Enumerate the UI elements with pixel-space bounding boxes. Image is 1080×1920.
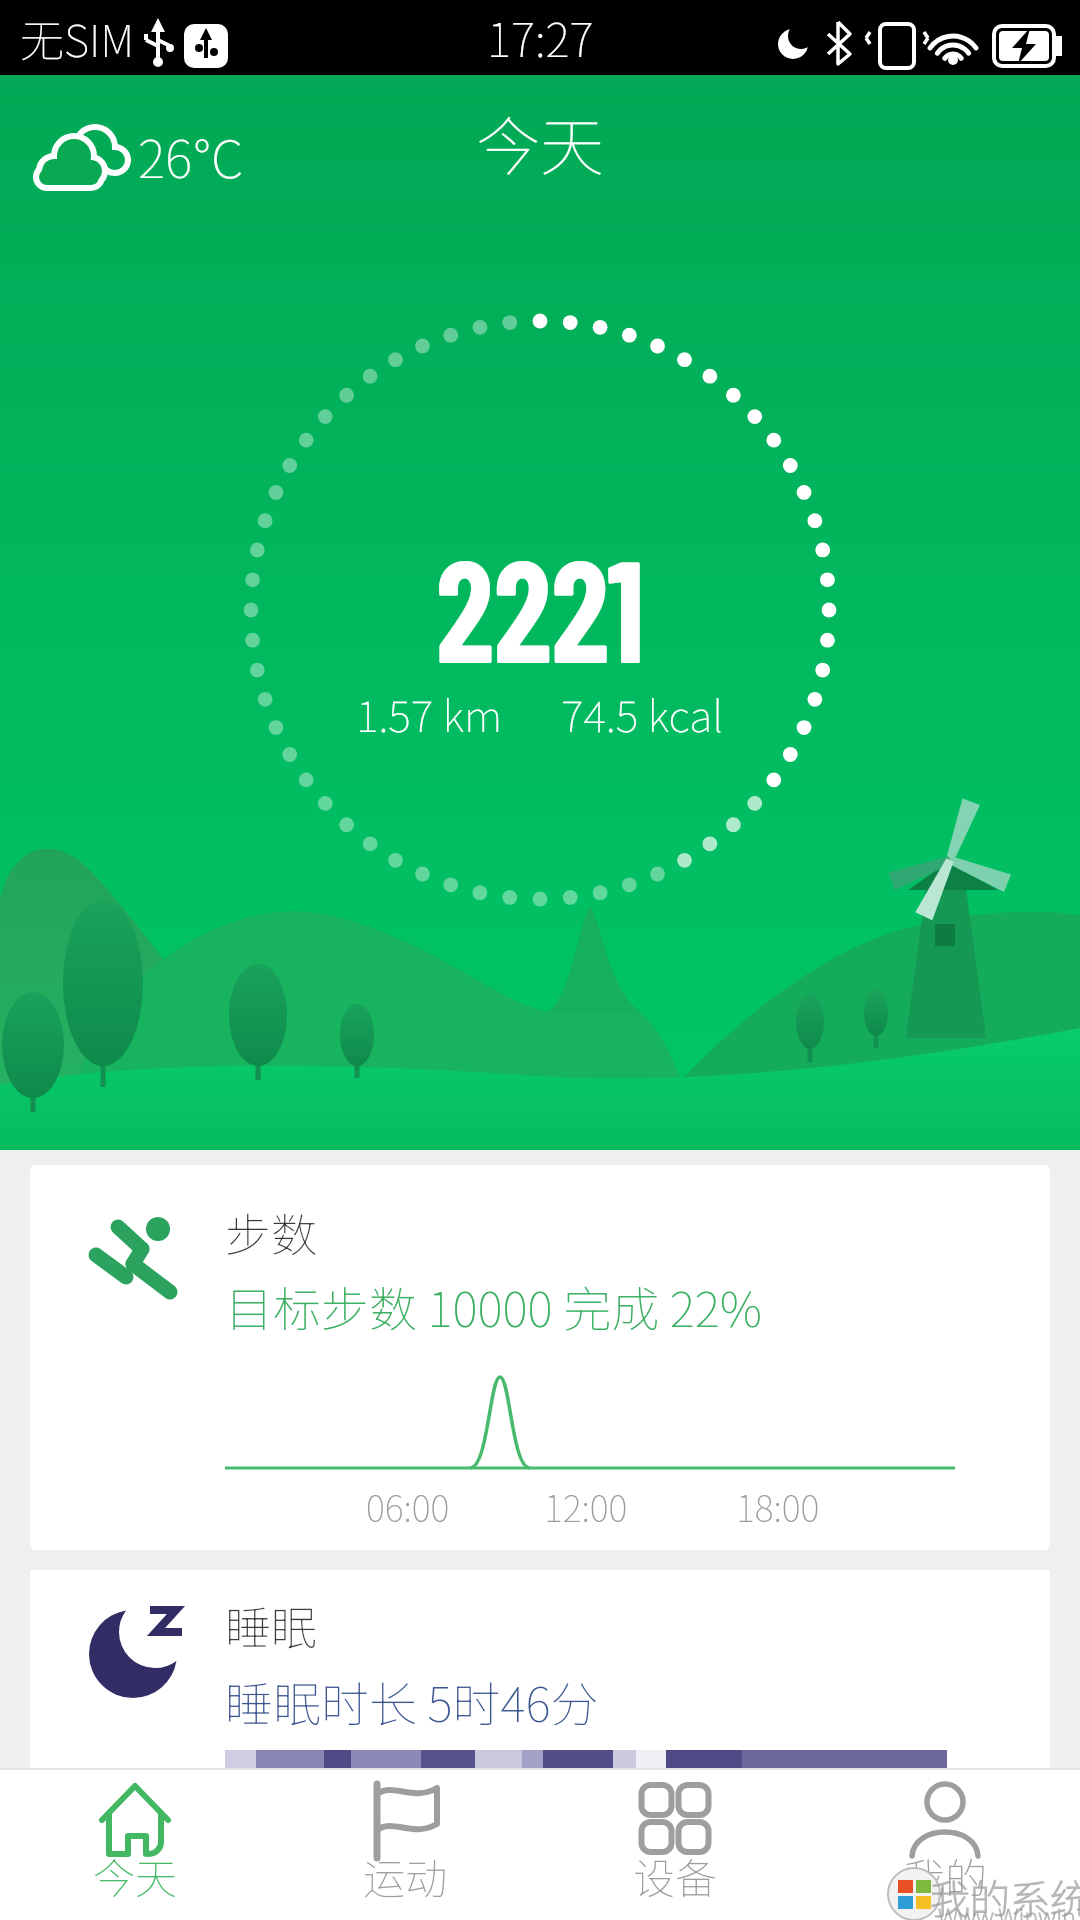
staticText: 今天: [93, 1845, 178, 1906]
staticText: 睡眠时长 5时46分: [225, 1666, 599, 1736]
button[interactable]: 运动: [270, 1768, 540, 1920]
staticText: 18:00: [736, 1480, 820, 1532]
staticText: Www.Winwin7.com: [938, 1898, 1080, 1920]
staticText: 步数: [225, 1199, 317, 1266]
staticText: 74.5 kcal: [561, 682, 724, 744]
staticText: 17:27: [487, 4, 594, 71]
staticText: 无SIM: [20, 6, 135, 70]
button[interactable]: 我的: [810, 1768, 1080, 1920]
staticText: 睡眠: [225, 1592, 317, 1659]
staticText: 我的: [903, 1845, 988, 1906]
staticText: 1.57 km: [356, 682, 503, 744]
staticText: 06:00: [366, 1480, 450, 1532]
staticText: 今天: [476, 96, 604, 189]
staticText: 目标步数 10000 完成 22%: [225, 1271, 762, 1341]
button[interactable]: 睡眠: [30, 1570, 1050, 1768]
staticText: 12:00: [544, 1480, 628, 1532]
staticText: 设备: [633, 1845, 718, 1906]
staticText: 26℃: [138, 118, 245, 193]
button[interactable]: 设备: [540, 1768, 810, 1920]
button[interactable]: 今天: [0, 1768, 270, 1920]
staticText: 我的系统之家: [930, 1868, 1080, 1920]
button[interactable]: 步数: [30, 1165, 1050, 1550]
staticText: 运动: [363, 1845, 448, 1906]
staticText: 2221: [436, 520, 645, 692]
